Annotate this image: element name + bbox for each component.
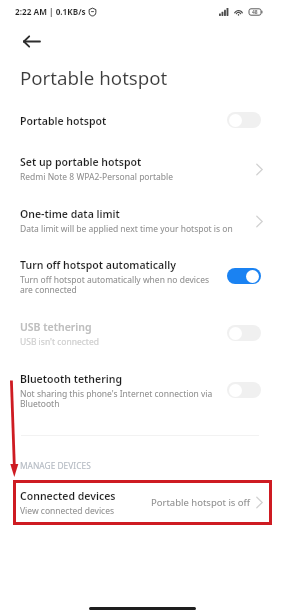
button[interactable]: Connected devices [13,480,272,525]
staticText: View connected devices [20,505,115,517]
staticText: One-time data limit [20,207,120,221]
button[interactable]: One-time data limit [0,203,282,236]
staticText: Data limit will be applied next time you… [20,223,233,235]
staticText: Bluetooth tethering [20,372,122,386]
button[interactable]: Set up portable hotspot [0,151,282,184]
staticText: Turn off hotspot automatically [20,258,176,272]
staticText: Redmi Note 8 WPA2-Personal portable [20,171,174,183]
staticText: 2:22 AM | 0.1KB/s [15,6,86,17]
staticText: USB tethering [20,320,92,334]
staticText: Portable hotspot is off [151,496,251,509]
staticText: Connected devices [20,489,116,503]
button[interactable]: Portable hotspot [0,109,282,130]
button[interactable]: Bluetooth tethering [0,368,282,410]
staticText: Not sharing this phone's Internet connec… [20,388,213,409]
staticText: Portable hotspot [20,65,168,90]
staticText: USB isn't connected [20,336,99,348]
button[interactable]: Back [17,27,45,55]
staticText: MANAGE DEVICES [20,460,91,471]
button[interactable]: Turn off hotspot automatically [0,254,282,296]
staticText: Portable hotspot [20,114,107,128]
staticText: Turn off hotspot automatically when no d… [20,274,210,295]
staticText: Set up portable hotspot [20,155,142,169]
button[interactable]: USB tethering [0,316,282,349]
staticText: 48 [252,9,258,16]
